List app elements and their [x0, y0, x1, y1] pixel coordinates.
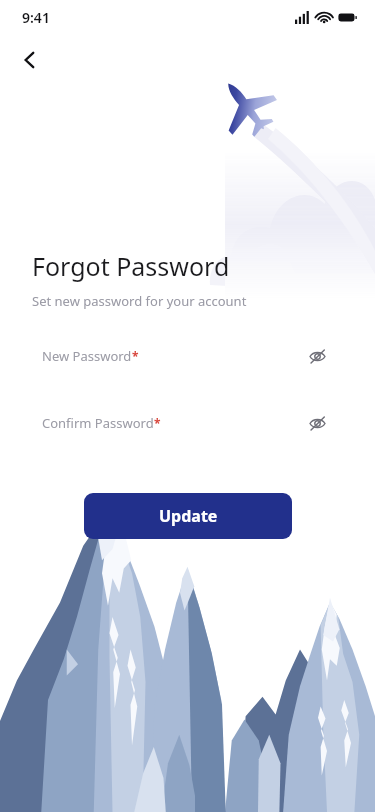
- button[interactable]: Show password: [304, 343, 330, 369]
- staticText: Confirm Password: [42, 414, 154, 432]
- button[interactable]: Back: [8, 38, 52, 82]
- staticText: Update: [159, 505, 218, 527]
- staticText: 9:41: [22, 8, 50, 27]
- staticText: *: [132, 348, 139, 364]
- staticText: Set new password for your account: [32, 292, 247, 310]
- button[interactable]: New Password: [31, 332, 344, 380]
- button[interactable]: Update: [84, 493, 292, 539]
- button[interactable]: Show password: [304, 410, 330, 436]
- button[interactable]: Confirm Password: [31, 399, 344, 447]
- staticText: Forgot Password: [32, 249, 230, 283]
- staticText: *: [154, 415, 161, 431]
- staticText: New Password: [42, 347, 132, 365]
